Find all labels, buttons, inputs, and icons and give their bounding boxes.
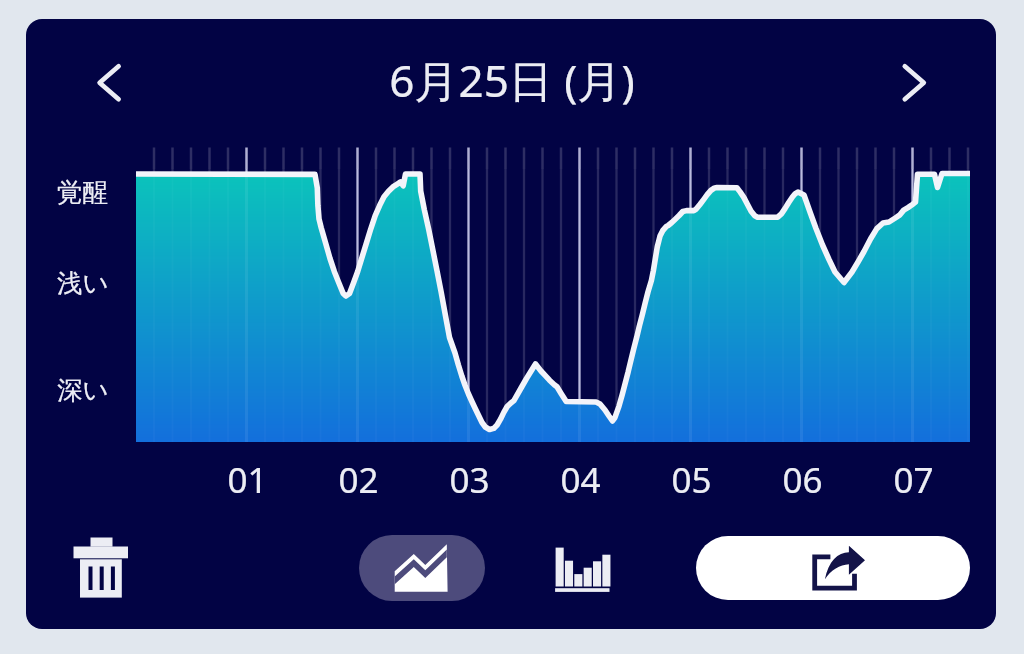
- button[interactable]: Next day: [885, 54, 942, 111]
- button[interactable]: Line chart: [359, 535, 485, 601]
- staticText: 02: [338, 456, 379, 502]
- staticText: 浅い: [57, 267, 109, 299]
- staticText: 6月25日 (月): [389, 50, 635, 110]
- staticText: 05: [671, 456, 712, 502]
- button[interactable]: Previous day: [81, 54, 138, 111]
- staticText: 01: [227, 456, 268, 502]
- button[interactable]: Delete: [56, 526, 144, 608]
- staticText: 04: [560, 456, 601, 502]
- staticText: 07: [893, 456, 934, 502]
- button[interactable]: Share: [696, 536, 970, 600]
- staticText: 06: [782, 456, 823, 502]
- staticText: 深い: [57, 374, 109, 406]
- staticText: 03: [449, 456, 490, 502]
- staticText: 覚醒: [57, 176, 108, 208]
- button[interactable]: Bar chart: [546, 530, 620, 606]
